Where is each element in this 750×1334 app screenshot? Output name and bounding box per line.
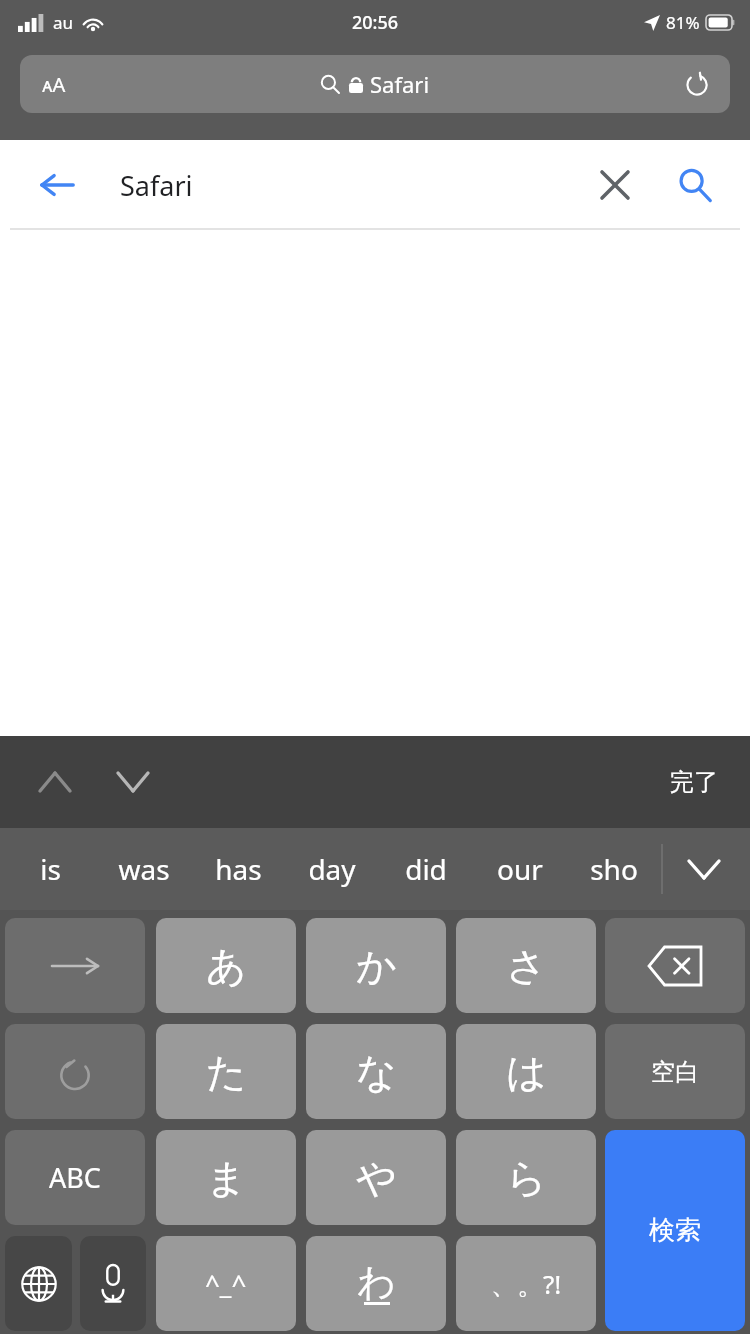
staticText: は — [506, 1047, 547, 1097]
button[interactable]: ᴀA — [20, 55, 730, 113]
button[interactable]: Search — [666, 156, 724, 214]
staticText: our — [497, 850, 543, 888]
button[interactable]: Switch keyboard — [5, 1236, 72, 1331]
staticText: sho — [590, 850, 638, 888]
staticText: au — [53, 11, 74, 34]
button[interactable]: さ — [456, 918, 596, 1013]
staticText: か — [356, 941, 397, 991]
staticText: 20:56 — [352, 10, 399, 35]
button[interactable]: Next field — [102, 751, 164, 813]
button[interactable]: was — [97, 828, 191, 910]
staticText: あ — [206, 941, 247, 991]
button[interactable]: sho — [567, 828, 661, 910]
button[interactable]: Hide suggestions — [676, 841, 732, 897]
button[interactable]: 完了 — [660, 757, 728, 807]
button[interactable]: Reload — [682, 69, 712, 99]
staticText: did — [405, 850, 447, 888]
staticText: ᴀA — [42, 71, 66, 98]
staticText: ^_^ — [205, 1266, 247, 1301]
staticText: ら — [506, 1153, 547, 1203]
staticText: was — [118, 850, 170, 888]
button[interactable]: our — [473, 828, 567, 910]
button[interactable]: has — [191, 828, 285, 910]
button[interactable]: Previous field — [24, 751, 86, 813]
staticText: ABC — [49, 1159, 101, 1196]
staticText: や — [356, 1153, 397, 1203]
button[interactable]: Dictate — [80, 1236, 146, 1331]
button[interactable]: Delete — [605, 918, 745, 1013]
button[interactable]: Clear — [588, 158, 642, 212]
staticText: 空白 — [651, 1057, 699, 1087]
button[interactable]: Undo — [5, 1024, 145, 1119]
staticText: day — [308, 850, 356, 888]
staticText: has — [215, 850, 262, 888]
button[interactable]: か — [306, 918, 446, 1013]
button[interactable]: ら — [456, 1130, 596, 1225]
button[interactable]: Back — [28, 156, 86, 214]
button[interactable]: た — [156, 1024, 296, 1119]
staticText: ま — [206, 1153, 247, 1203]
staticText: is — [40, 850, 61, 888]
button[interactable]: は — [456, 1024, 596, 1119]
staticText: さ — [506, 941, 547, 991]
staticText: な — [356, 1047, 397, 1097]
button[interactable]: な — [306, 1024, 446, 1119]
button[interactable]: ま — [156, 1130, 296, 1225]
button[interactable]: ^_^ — [156, 1236, 296, 1331]
button[interactable]: あ — [156, 918, 296, 1013]
staticText: Safari — [370, 69, 430, 99]
staticText: 、。?! — [491, 1266, 562, 1302]
staticText: Safari — [120, 167, 193, 204]
button[interactable]: わ — [306, 1236, 446, 1331]
staticText: 検索 — [649, 1214, 701, 1247]
button[interactable]: ABC — [5, 1130, 145, 1225]
button[interactable]: did — [379, 828, 473, 910]
staticText: わ — [357, 1258, 396, 1306]
button[interactable]: Next candidate — [5, 918, 145, 1013]
button[interactable]: is — [4, 828, 97, 910]
button[interactable]: や — [306, 1130, 446, 1225]
button[interactable]: 検索 — [605, 1130, 745, 1331]
staticText: た — [206, 1047, 247, 1097]
staticText: 81% — [666, 11, 700, 34]
button[interactable]: 、。?! — [456, 1236, 596, 1331]
button[interactable]: 空白 — [605, 1024, 745, 1119]
button[interactable]: day — [285, 828, 379, 910]
staticText: 完了 — [670, 767, 718, 797]
